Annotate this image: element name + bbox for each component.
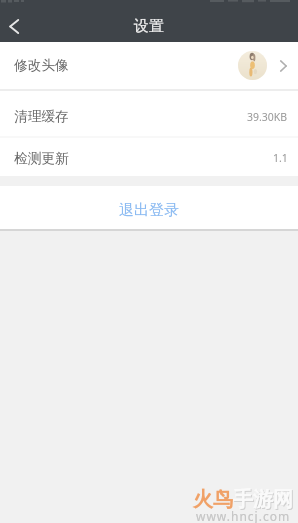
staticText: 设置 [134,17,164,36]
staticText: 检测更新 [14,150,69,167]
staticText: 1.1 [273,151,288,165]
staticText: 火鸟 [193,487,233,512]
staticText: 39.30KB [247,110,288,124]
button[interactable]: 检测更新 [0,138,298,176]
staticText: 退出登录 [119,201,179,220]
button[interactable]: Back [0,10,32,42]
staticText: 修改头像 [14,57,69,74]
button[interactable]: 清理缓存 [0,91,298,136]
staticText: 清理缓存 [14,108,69,125]
button[interactable]: 退出登录 [0,186,298,229]
staticText: 手游网 [233,487,293,512]
button[interactable]: 修改头像 [0,42,298,89]
staticText: www.hncj.com [196,508,291,523]
staticText: 手游网 [234,488,294,513]
